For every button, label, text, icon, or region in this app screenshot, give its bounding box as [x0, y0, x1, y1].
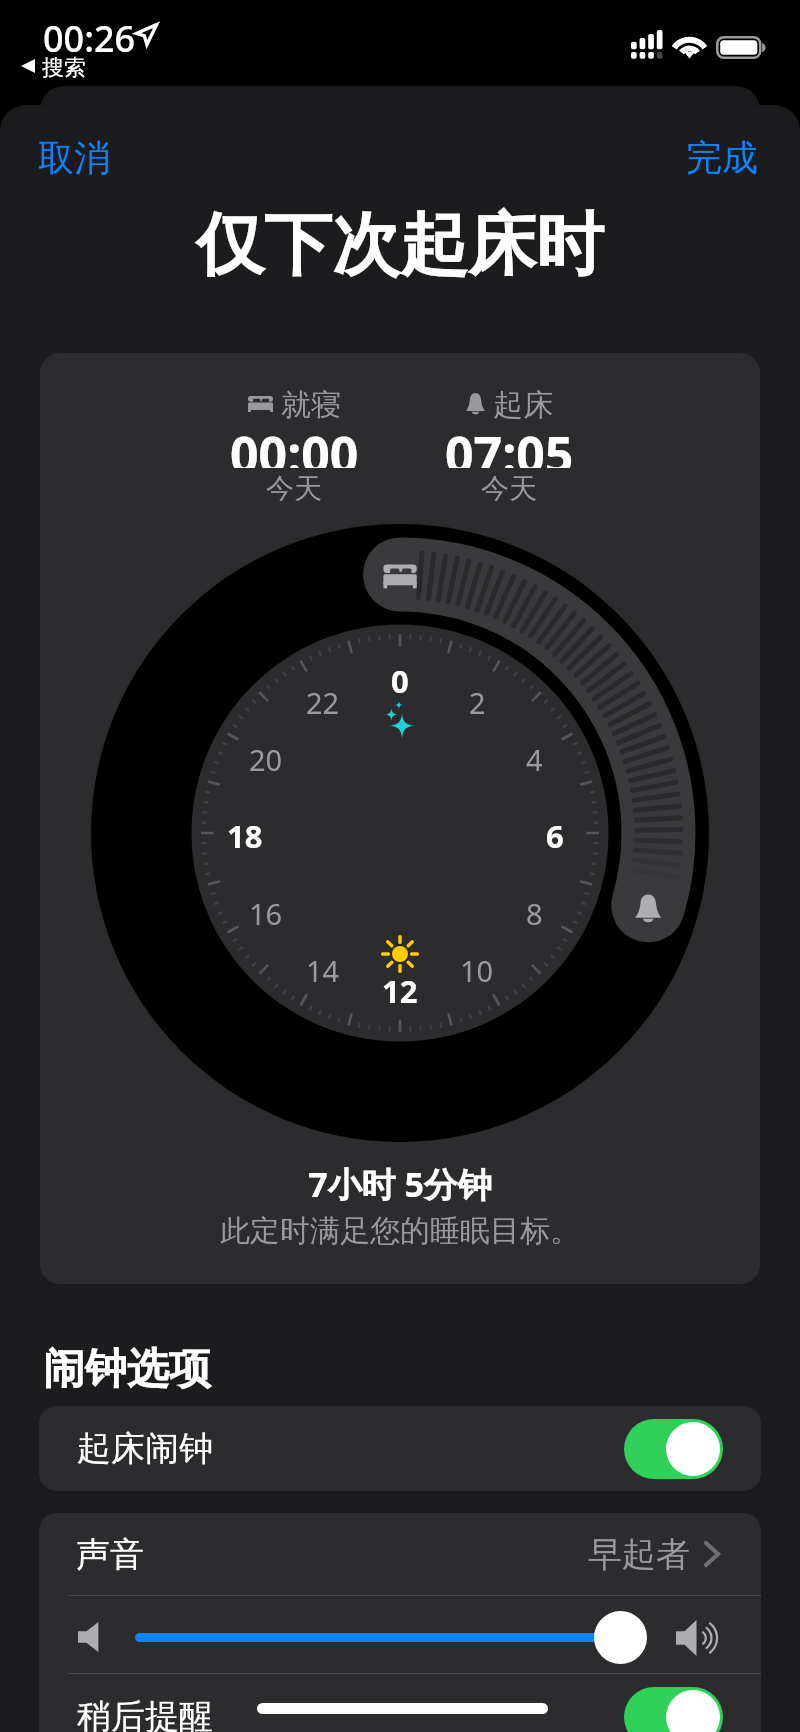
- staticText: 今天: [481, 471, 537, 501]
- button[interactable]: 稍后提醒: [39, 1674, 761, 1732]
- staticText: 起床: [493, 386, 553, 422]
- other: Wi-Fi: [674, 36, 705, 59]
- button[interactable]: 起床闹钟: [624, 1419, 723, 1479]
- staticText: 仅下次起床时: [0, 203, 800, 289]
- staticText: 今天: [266, 471, 322, 501]
- staticText: 此定时满足您的睡眠目标。: [40, 1212, 760, 1250]
- staticText: 20: [249, 740, 283, 779]
- staticText: 就寝: [281, 386, 341, 422]
- staticText: 7小时 5分钟: [40, 1161, 760, 1207]
- button[interactable]: 取消: [14, 119, 134, 196]
- staticText: 搜索: [42, 54, 86, 82]
- staticText: 12: [382, 970, 418, 1012]
- other: Battery: [716, 36, 768, 59]
- staticText: 早起者: [588, 1533, 690, 1576]
- staticText: 22: [306, 683, 340, 722]
- staticText: 4: [526, 740, 543, 779]
- button[interactable]: 稍后提醒: [624, 1687, 723, 1732]
- button[interactable]: 声音: [39, 1513, 761, 1595]
- button[interactable]: 完成: [662, 119, 782, 196]
- staticText: 18: [227, 815, 263, 857]
- staticText: 16: [249, 894, 283, 933]
- staticText: 07:05: [445, 420, 574, 468]
- button[interactable]: [39, 1596, 761, 1673]
- staticText: 00:00: [230, 420, 359, 468]
- staticText: 稍后提醒: [77, 1695, 213, 1732]
- staticText: 闹钟选项: [43, 1343, 211, 1396]
- staticText: 8: [526, 894, 543, 933]
- staticText: 10: [460, 951, 494, 990]
- staticText: 声音: [76, 1533, 144, 1576]
- staticText: 0: [391, 660, 409, 702]
- other: Cellular signal: [631, 33, 663, 59]
- staticText: 14: [306, 951, 340, 990]
- staticText: 2: [469, 683, 486, 722]
- button[interactable]: 起床闹钟: [39, 1406, 761, 1491]
- staticText: 起床闹钟: [77, 1427, 213, 1470]
- staticText: 00:26: [43, 14, 136, 63]
- staticText: 取消: [38, 135, 110, 180]
- staticText: 6: [546, 815, 564, 857]
- staticText: 完成: [686, 135, 758, 180]
